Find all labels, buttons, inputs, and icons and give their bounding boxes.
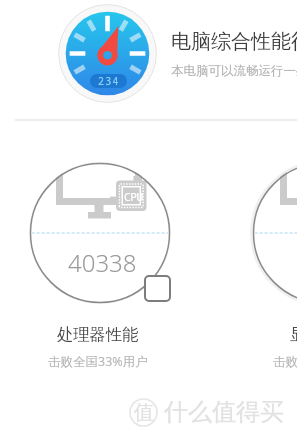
staticText: 电脑综合性能得分 (171, 29, 297, 54)
staticText: 什么值得买 (164, 397, 284, 427)
staticText: 234 (98, 74, 120, 88)
staticText: CPU (124, 189, 143, 204)
staticText: 显卡性能 (290, 324, 297, 345)
button[interactable]: 综合性能评分 (58, 4, 157, 103)
button[interactable]: 234 (90, 74, 127, 88)
staticText: 处理器性能 (57, 324, 139, 345)
staticText: 40338 (68, 246, 137, 279)
staticText: 值 (134, 400, 154, 425)
button[interactable]: CPU (29, 162, 171, 304)
staticText: 本电脑可以流畅运行一些 (171, 63, 297, 79)
staticText: 击败全国21%用户 (273, 353, 297, 370)
staticText: 击败全国33%用户 (48, 353, 148, 370)
button[interactable]: 查看详情 (144, 275, 171, 302)
